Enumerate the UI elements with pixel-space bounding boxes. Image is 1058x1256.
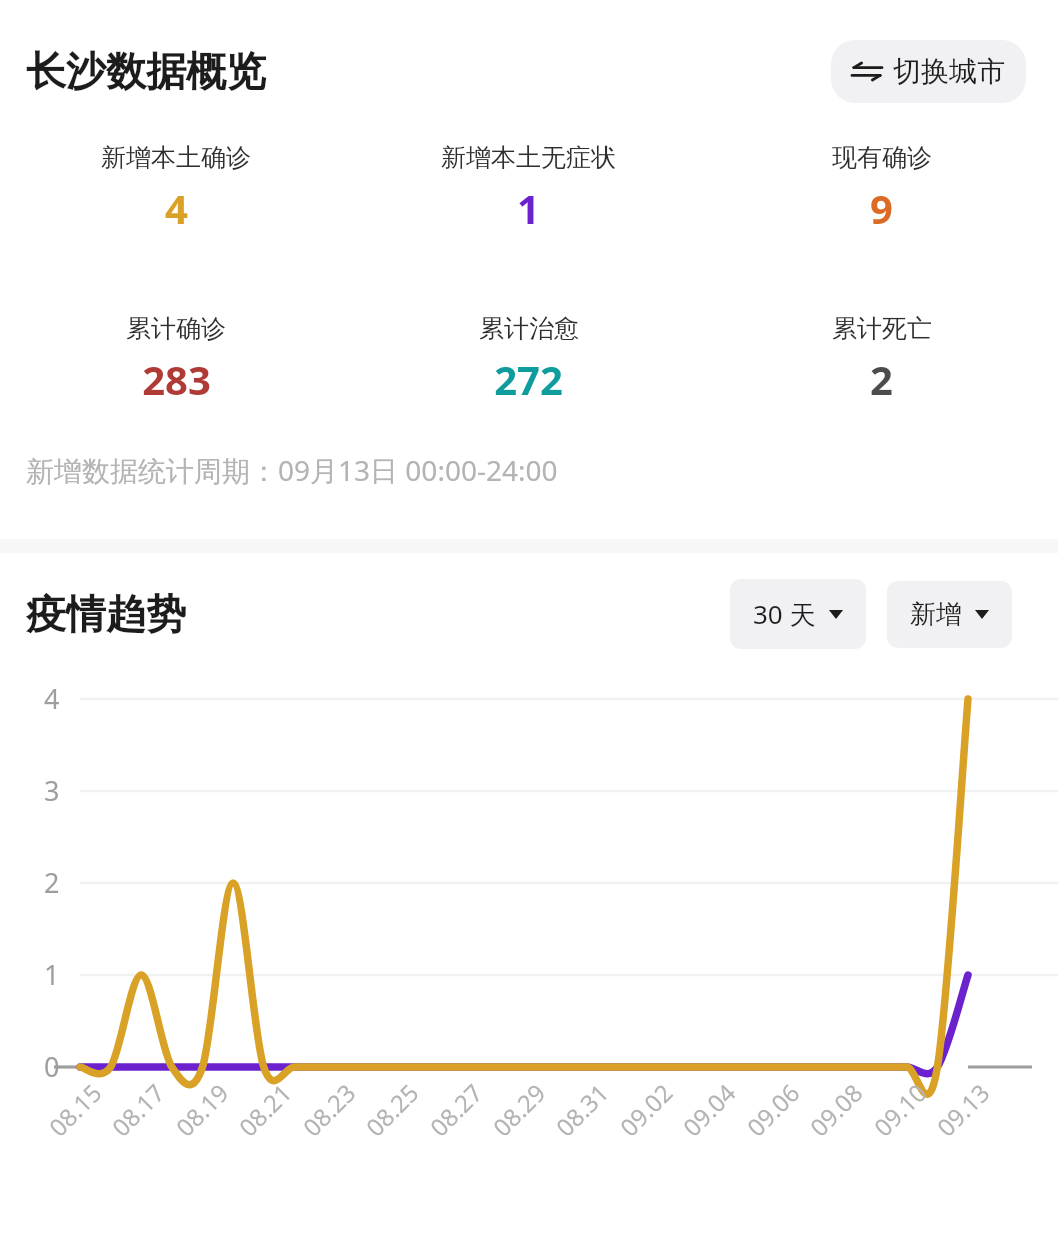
staticText: 9: [870, 181, 893, 235]
staticText: 08.23: [295, 1076, 363, 1143]
staticText: 09.08: [802, 1076, 870, 1143]
staticText: 09.10: [866, 1076, 934, 1143]
staticText: 08.15: [41, 1076, 109, 1143]
staticText: 08.19: [168, 1076, 236, 1143]
staticText: 08.25: [358, 1076, 426, 1143]
button[interactable]: 新增: [887, 581, 1012, 648]
staticText: 1: [44, 956, 60, 993]
staticText: 08.29: [485, 1076, 553, 1143]
staticText: 新增本土确诊: [101, 142, 251, 173]
staticText: 长沙数据概览: [26, 46, 266, 96]
staticText: 累计死亡: [832, 313, 932, 344]
staticText: 现有确诊: [832, 142, 932, 173]
staticText: 272: [494, 352, 563, 406]
staticText: 0: [44, 1048, 60, 1085]
button[interactable]: 累计死亡: [705, 313, 1058, 406]
button[interactable]: 累计治愈: [352, 313, 705, 406]
staticText: 08.17: [104, 1076, 172, 1143]
staticText: 新增数据统计周期：09月13日 00:00-24:00: [26, 451, 558, 489]
staticText: 切换城市: [893, 54, 1005, 89]
staticText: 2: [44, 864, 60, 901]
staticText: 09.06: [739, 1076, 807, 1143]
staticText: 283: [142, 352, 211, 406]
staticText: 3: [44, 772, 60, 809]
staticText: 30 天: [753, 596, 816, 632]
button[interactable]: 30 天: [730, 579, 866, 649]
button[interactable]: 新增本土确诊: [0, 142, 352, 235]
staticText: 08.21: [231, 1076, 299, 1143]
button[interactable]: 现有确诊: [705, 142, 1058, 235]
staticText: 累计确诊: [126, 313, 226, 344]
staticText: 08.27: [422, 1076, 490, 1143]
staticText: 09.02: [612, 1076, 680, 1143]
staticText: 08.31: [548, 1076, 616, 1143]
staticText: 2: [870, 352, 893, 406]
staticText: 1: [517, 181, 540, 235]
button[interactable]: 累计确诊: [0, 313, 352, 406]
button[interactable]: 切换城市: [831, 40, 1026, 103]
staticText: 09.04: [675, 1076, 743, 1143]
staticText: 4: [165, 181, 188, 235]
staticText: 新增: [910, 598, 962, 631]
staticText: 疫情趋势: [26, 589, 186, 639]
button[interactable]: 新增本土无症状: [352, 142, 705, 235]
staticText: 累计治愈: [479, 313, 579, 344]
staticText: 09.13: [929, 1076, 997, 1143]
staticText: 新增本土无症状: [441, 142, 616, 173]
staticText: 4: [44, 680, 60, 717]
